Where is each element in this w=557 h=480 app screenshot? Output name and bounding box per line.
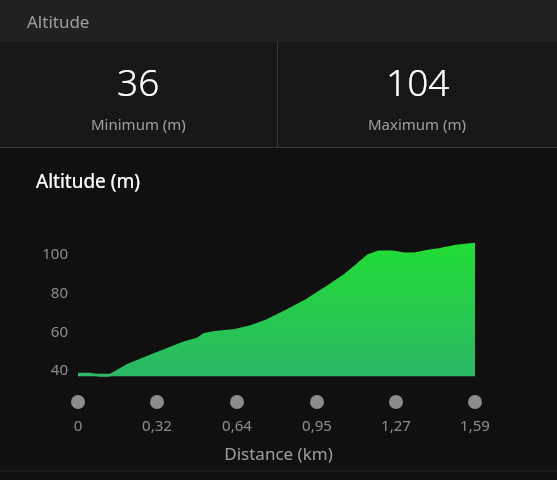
staticText: 1,27 <box>366 415 426 435</box>
button[interactable]: 36 <box>0 42 277 148</box>
staticText: 0,95 <box>287 415 347 435</box>
button[interactable]: 104 <box>278 42 557 148</box>
staticText: 60 <box>20 321 68 341</box>
staticText: 0 <box>48 415 108 435</box>
staticText: 1,59 <box>445 415 505 435</box>
staticText: 36 <box>117 56 160 106</box>
staticText: Altitude (m) <box>36 168 140 194</box>
staticText: 40 <box>20 359 68 379</box>
staticText: Altitude <box>27 10 90 33</box>
staticText: 80 <box>20 282 68 302</box>
button[interactable]: Altitude <box>0 0 557 42</box>
staticText: 100 <box>20 243 68 263</box>
staticText: 0,64 <box>207 415 267 435</box>
staticText: 104 <box>386 56 450 106</box>
staticText: Minimum (m) <box>91 114 186 134</box>
staticText: 0,32 <box>127 415 187 435</box>
staticText: Distance (km) <box>0 442 557 465</box>
staticText: Maximum (m) <box>368 114 467 134</box>
